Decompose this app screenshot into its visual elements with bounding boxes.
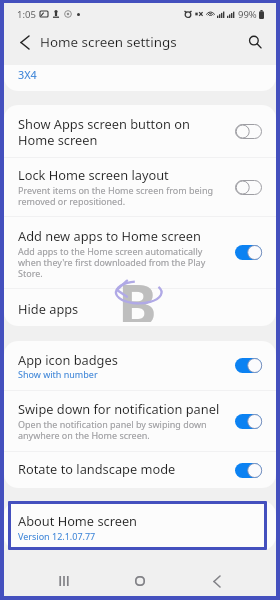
button[interactable]: App icon badges (4, 341, 276, 390)
button[interactable]: Back (10, 30, 34, 54)
staticText: Show Apps screen button on Home screen (18, 115, 190, 148)
button[interactable]: Switch on (235, 414, 262, 429)
staticText: Prevent items on the Home screen from be… (18, 184, 213, 208)
button[interactable]: Switch off (235, 180, 262, 195)
staticText: Add new apps to Home screen (18, 227, 201, 244)
staticText: Swipe down for notification panel (18, 400, 220, 417)
button[interactable]: Switch on (235, 463, 262, 478)
button[interactable]: Lock Home screen layout (4, 158, 276, 216)
staticText: 99% (238, 8, 257, 21)
button[interactable]: Switch off (235, 124, 262, 139)
staticText: Version 12.1.07.77 (18, 530, 96, 542)
staticText: Hide apps (18, 300, 79, 317)
staticText: About Home screen (18, 512, 138, 529)
staticText: App icon badges (18, 351, 118, 368)
button[interactable]: 3X4 (4, 65, 276, 91)
button[interactable]: Back (199, 563, 235, 599)
staticText: Show with number (18, 368, 98, 380)
button[interactable]: Home (122, 563, 158, 599)
staticText: 3X4 (18, 67, 37, 82)
button[interactable]: Add new apps to Home screen (4, 217, 276, 288)
button[interactable]: Hide apps (4, 289, 276, 326)
staticText: B (118, 264, 157, 322)
staticText: 1:05 (17, 8, 36, 21)
staticText: Home screen settings (40, 33, 177, 51)
button[interactable]: About Home screen (4, 501, 276, 550)
staticText: Add apps to the Home screen automaticall… (18, 245, 206, 280)
button[interactable]: Switch on (235, 358, 262, 373)
button[interactable]: Search (243, 30, 267, 54)
button[interactable]: Show Apps screen button on Home screen (4, 105, 276, 157)
button[interactable]: Rotate to landscape mode (4, 452, 276, 488)
button[interactable]: Swipe down for notification panel (4, 391, 276, 451)
staticText: Open the notification panel by swiping d… (18, 418, 207, 442)
button[interactable]: Switch on (235, 245, 262, 260)
staticText: Rotate to landscape mode (18, 460, 176, 477)
staticText: Lock Home screen layout (18, 166, 169, 183)
button[interactable]: Recent apps (46, 563, 82, 599)
